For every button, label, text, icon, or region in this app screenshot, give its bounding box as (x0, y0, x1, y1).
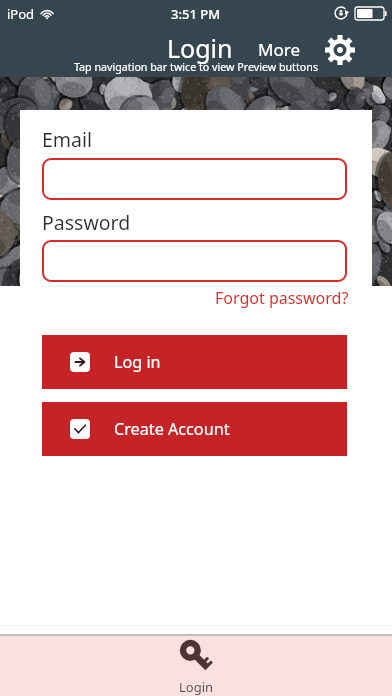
staticText: iPod (7, 5, 35, 23)
button[interactable] (42, 240, 347, 282)
staticText: Login (179, 678, 214, 696)
button[interactable]: Forgot password? (215, 287, 349, 309)
staticText: Password (42, 209, 131, 236)
button[interactable] (42, 158, 347, 200)
button[interactable]: More (254, 36, 304, 63)
button[interactable]: Log in (42, 335, 347, 389)
button[interactable]: Create Account (42, 402, 347, 456)
staticText: More (258, 38, 300, 61)
button[interactable]: Login (0, 636, 392, 696)
staticText: Forgot password? (215, 287, 349, 309)
staticText: Log in (114, 351, 161, 373)
staticText: 3:51 PM (171, 5, 221, 23)
staticText: Tap navigation bar twice to view Preview… (0, 60, 392, 75)
staticText: Login (167, 31, 233, 65)
staticText: Email (42, 126, 93, 153)
staticText: Create Account (114, 418, 230, 440)
button[interactable]: Settings (322, 32, 358, 68)
